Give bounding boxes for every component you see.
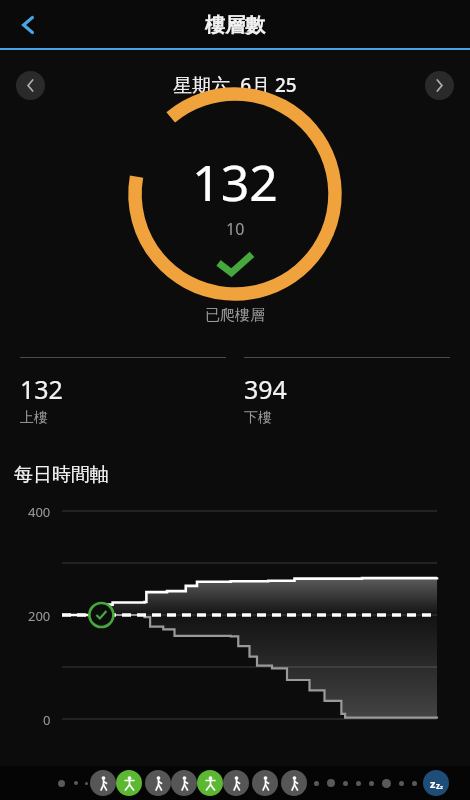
staticText: 0 bbox=[43, 711, 51, 729]
staticText: z bbox=[436, 780, 440, 791]
button[interactable]: 394 bbox=[244, 357, 450, 427]
staticText: 星期六, 6月 25 bbox=[173, 72, 297, 98]
staticText: 已爬樓層 bbox=[205, 306, 265, 325]
button[interactable]: 132 bbox=[20, 357, 226, 427]
staticText: z bbox=[440, 783, 443, 791]
staticText: 樓層數 bbox=[205, 13, 265, 38]
button[interactable]: Previous day bbox=[16, 71, 45, 100]
button[interactable]: Back bbox=[0, 0, 56, 50]
staticText: 200 bbox=[28, 607, 51, 625]
button[interactable]: Activity bbox=[281, 770, 307, 796]
button[interactable]: Activity bbox=[145, 770, 171, 796]
staticText: 132 bbox=[20, 372, 63, 406]
staticText: 132 bbox=[192, 148, 278, 216]
staticText: z bbox=[430, 776, 436, 791]
button[interactable]: Sleep bbox=[423, 770, 449, 796]
button[interactable]: Activity bbox=[171, 770, 197, 796]
button[interactable]: Activity bbox=[116, 770, 142, 796]
staticText: 10 bbox=[226, 218, 245, 240]
button[interactable]: Activity bbox=[223, 770, 249, 796]
staticText: 400 bbox=[28, 503, 51, 521]
staticText: 每日時間軸 bbox=[14, 463, 109, 487]
button[interactable]: Activity bbox=[252, 770, 278, 796]
button[interactable]: Activity bbox=[197, 770, 223, 796]
staticText: 上樓 bbox=[20, 409, 48, 427]
button[interactable]: Activity bbox=[90, 770, 116, 796]
staticText: 下樓 bbox=[244, 409, 272, 427]
button[interactable]: Next day bbox=[425, 71, 454, 100]
staticText: 394 bbox=[244, 372, 287, 406]
